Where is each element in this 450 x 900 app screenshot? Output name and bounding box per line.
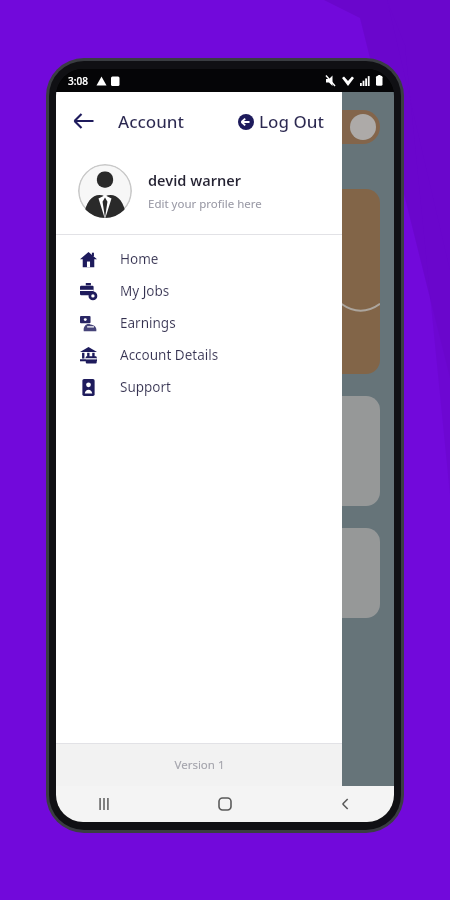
staticText: devid warner xyxy=(148,170,241,190)
staticText: Edit your profile here xyxy=(148,196,262,212)
staticText: 3:08 xyxy=(68,74,88,88)
staticText: Support xyxy=(120,378,171,396)
button[interactable]: My Jobs xyxy=(56,275,342,307)
button[interactable]: devid warner xyxy=(56,150,342,234)
button[interactable]: Home xyxy=(207,786,243,822)
staticText: Home xyxy=(120,250,159,268)
staticText: Log Out xyxy=(259,110,324,133)
button[interactable]: Back xyxy=(328,786,364,822)
staticText: Account xyxy=(118,110,185,133)
button[interactable]: Recent apps xyxy=(86,786,122,822)
staticText: ONLINE xyxy=(266,120,306,134)
button[interactable]: Support xyxy=(56,371,342,403)
staticText: My Jobs xyxy=(120,282,170,300)
button[interactable]: Home xyxy=(56,243,342,275)
button[interactable]: Back xyxy=(64,101,104,141)
button[interactable]: Account Details xyxy=(56,339,342,371)
button[interactable]: Earnings xyxy=(56,307,342,339)
staticText: Earnings xyxy=(120,314,176,332)
staticText: Account Details xyxy=(120,346,219,364)
button[interactable]: Log Out xyxy=(234,104,328,139)
staticText: Version 1 xyxy=(174,757,225,773)
